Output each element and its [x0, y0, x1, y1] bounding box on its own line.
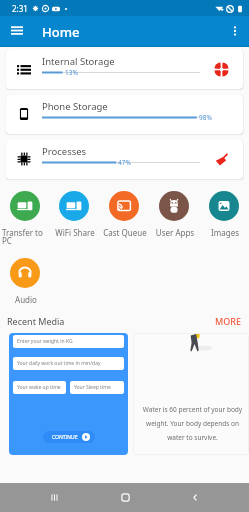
- staticText: Images: [201, 227, 249, 238]
- button[interactable]: MORE: [213, 313, 244, 329]
- staticText: Cast Queue: [101, 227, 149, 238]
- staticText: MORE: [215, 315, 242, 327]
- staticText: WiFi Share: [51, 227, 99, 238]
- staticText: Internal Storage: [42, 55, 115, 68]
- button[interactable]: User Apps: [149, 191, 199, 238]
- button[interactable]: Water is 60 percent of your body weight.…: [133, 333, 249, 455]
- button[interactable]: WiFi Share: [49, 191, 99, 238]
- staticText: Processes: [42, 145, 87, 158]
- staticText: Water is 60 percent of your body weight.…: [138, 405, 247, 442]
- staticText: Phone Storage: [42, 100, 108, 113]
- button[interactable]: Processes: [6, 140, 243, 179]
- button[interactable]: Internal Storage: [6, 50, 243, 89]
- button[interactable]: Transfer to PC: [0, 191, 49, 246]
- staticText: 2:31: [12, 3, 28, 14]
- button[interactable]: More options: [223, 19, 247, 43]
- staticText: Audio: [2, 294, 50, 305]
- button[interactable]: Enter your weight in KG: [9, 333, 128, 455]
- staticText: Your wake up time: [17, 384, 61, 391]
- button[interactable]: Audio: [0, 258, 50, 305]
- staticText: Your daily work out time in min/day: [17, 360, 101, 367]
- button[interactable]: Back: [179, 483, 211, 512]
- staticText: CONTINUE: [52, 434, 78, 441]
- button[interactable]: CONTINUE: [43, 431, 95, 443]
- staticText: Your Sleep time: [74, 384, 111, 391]
- staticText: User Apps: [151, 227, 199, 238]
- button[interactable]: Open navigation menu: [5, 19, 29, 43]
- button[interactable]: Home: [109, 483, 141, 512]
- staticText: 13%: [65, 68, 78, 77]
- staticText: Recent Media: [7, 315, 65, 327]
- staticText: 47%: [118, 158, 131, 167]
- staticText: Enter your weight in KG: [17, 338, 73, 345]
- staticText: Home: [42, 23, 80, 41]
- button[interactable]: Images: [199, 191, 249, 238]
- staticText: Transfer to PC: [2, 227, 49, 246]
- staticText: 98%: [199, 113, 212, 122]
- button[interactable]: Cast Queue: [99, 191, 149, 238]
- button[interactable]: Recent apps: [38, 483, 70, 512]
- button[interactable]: Phone Storage: [6, 95, 243, 134]
